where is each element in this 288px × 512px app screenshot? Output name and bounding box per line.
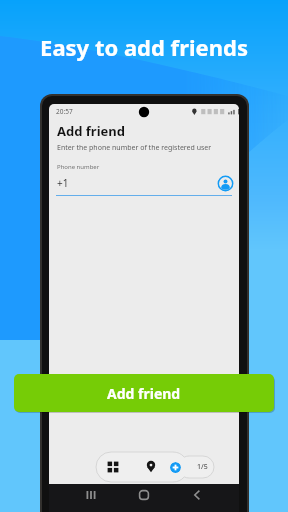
button[interactable]: Apps (106, 460, 120, 474)
staticText: Enter the phone number of the registered… (57, 143, 212, 153)
button[interactable]: Add friend (14, 374, 274, 412)
staticText: Easy to add friends (0, 32, 288, 62)
button[interactable]: Recents (82, 486, 100, 504)
button[interactable]: Back (188, 486, 206, 504)
staticText: Add friend (107, 384, 181, 403)
button[interactable]: Map (144, 460, 158, 474)
button[interactable]: 1/5 (178, 456, 214, 478)
staticText: Phone number (57, 163, 100, 171)
other: Choose contact (218, 176, 233, 191)
button[interactable]: Home (135, 486, 153, 504)
staticText: +1 (57, 176, 69, 190)
staticText: Add friend (57, 122, 125, 140)
staticText: 1/5 (197, 462, 208, 472)
staticText: 20:57 (56, 107, 73, 116)
button[interactable]: Add (170, 462, 181, 473)
